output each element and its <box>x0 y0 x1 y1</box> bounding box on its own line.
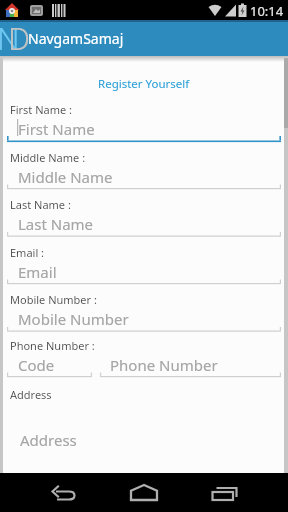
button[interactable]: Email <box>7 258 281 286</box>
button[interactable] <box>121 475 167 509</box>
button[interactable]: Mobile Number <box>7 305 281 333</box>
button[interactable]: Last Name <box>7 210 281 238</box>
button[interactable]: Code <box>7 348 92 378</box>
button[interactable]: Address <box>7 405 281 473</box>
staticText: Middle Name : <box>10 150 86 165</box>
staticText: D <box>8 17 31 53</box>
button[interactable] <box>201 475 247 509</box>
staticText: Last Name <box>18 214 94 234</box>
button[interactable]: First Name <box>7 115 281 143</box>
staticText: Register Yourself <box>98 76 190 92</box>
staticText: Email : <box>10 245 45 260</box>
staticText: Mobile Number : <box>10 292 97 307</box>
staticText: Phone Number <box>110 355 218 375</box>
staticText: 10:14 <box>250 2 284 20</box>
button[interactable] <box>40 475 86 509</box>
staticText: Middle Name <box>18 167 113 187</box>
button[interactable]: N <box>0 20 288 56</box>
button[interactable]: Phone Number <box>100 348 281 378</box>
staticText: Code <box>18 355 55 375</box>
staticText: Last Name : <box>10 197 71 212</box>
staticText: NavgamSamaj <box>28 29 124 48</box>
staticText: N <box>0 17 20 53</box>
staticText: Phone Number : <box>10 338 95 353</box>
staticText: Address <box>10 387 52 402</box>
staticText: Address <box>20 430 77 450</box>
staticText: First Name : <box>10 102 73 117</box>
staticText: First Name <box>18 119 95 139</box>
staticText: Email <box>18 262 57 282</box>
button[interactable]: Middle Name <box>7 163 281 191</box>
staticText: Mobile Number <box>18 309 129 329</box>
